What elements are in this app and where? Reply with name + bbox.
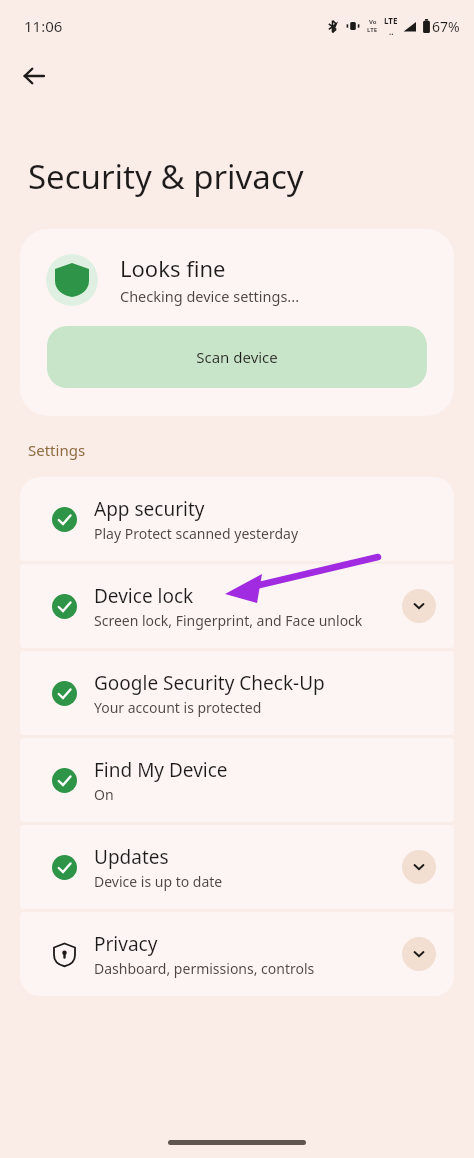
button[interactable]: Find My Device xyxy=(20,738,454,822)
staticText: Google Security Check-Up xyxy=(94,670,325,696)
staticText: Dashboard, permissions, controls xyxy=(94,959,315,978)
button[interactable]: App security xyxy=(20,477,454,561)
button[interactable]: Scan device xyxy=(47,326,427,388)
staticText: Looks fine xyxy=(120,253,226,283)
staticText: Scan device xyxy=(196,347,278,367)
staticText: LTE xyxy=(384,15,398,26)
button[interactable]: Updates xyxy=(20,825,454,909)
staticText: 11:06 xyxy=(24,16,63,36)
staticText: Security & privacy xyxy=(28,154,304,199)
staticText: .. xyxy=(389,26,394,37)
staticText: Device lock xyxy=(94,583,194,609)
staticText: Privacy xyxy=(94,931,158,957)
staticText: Vo xyxy=(369,18,377,26)
button[interactable]: Device lock xyxy=(20,564,454,648)
button[interactable]: Expand xyxy=(402,850,436,884)
staticText: Settings xyxy=(28,440,86,460)
staticText: Find My Device xyxy=(94,757,228,783)
staticText: On xyxy=(94,785,114,804)
button[interactable]: Expand xyxy=(402,937,436,971)
button[interactable]: Google Security Check-Up xyxy=(20,651,454,735)
staticText: LTE xyxy=(367,26,378,34)
staticText: Checking device settings... xyxy=(120,286,300,306)
staticText: App security xyxy=(94,496,205,522)
staticText: Play Protect scanned yesterday xyxy=(94,524,299,543)
staticText: Screen lock, Fingerprint, and Face unloc… xyxy=(94,611,363,630)
button[interactable]: Back xyxy=(10,52,58,100)
staticText: 67% xyxy=(432,17,460,36)
staticText: Device is up to date xyxy=(94,872,223,891)
button[interactable]: Privacy xyxy=(20,912,454,996)
button[interactable]: Expand xyxy=(402,589,436,623)
staticText: Your account is protected xyxy=(94,698,262,717)
staticText: Updates xyxy=(94,844,169,870)
